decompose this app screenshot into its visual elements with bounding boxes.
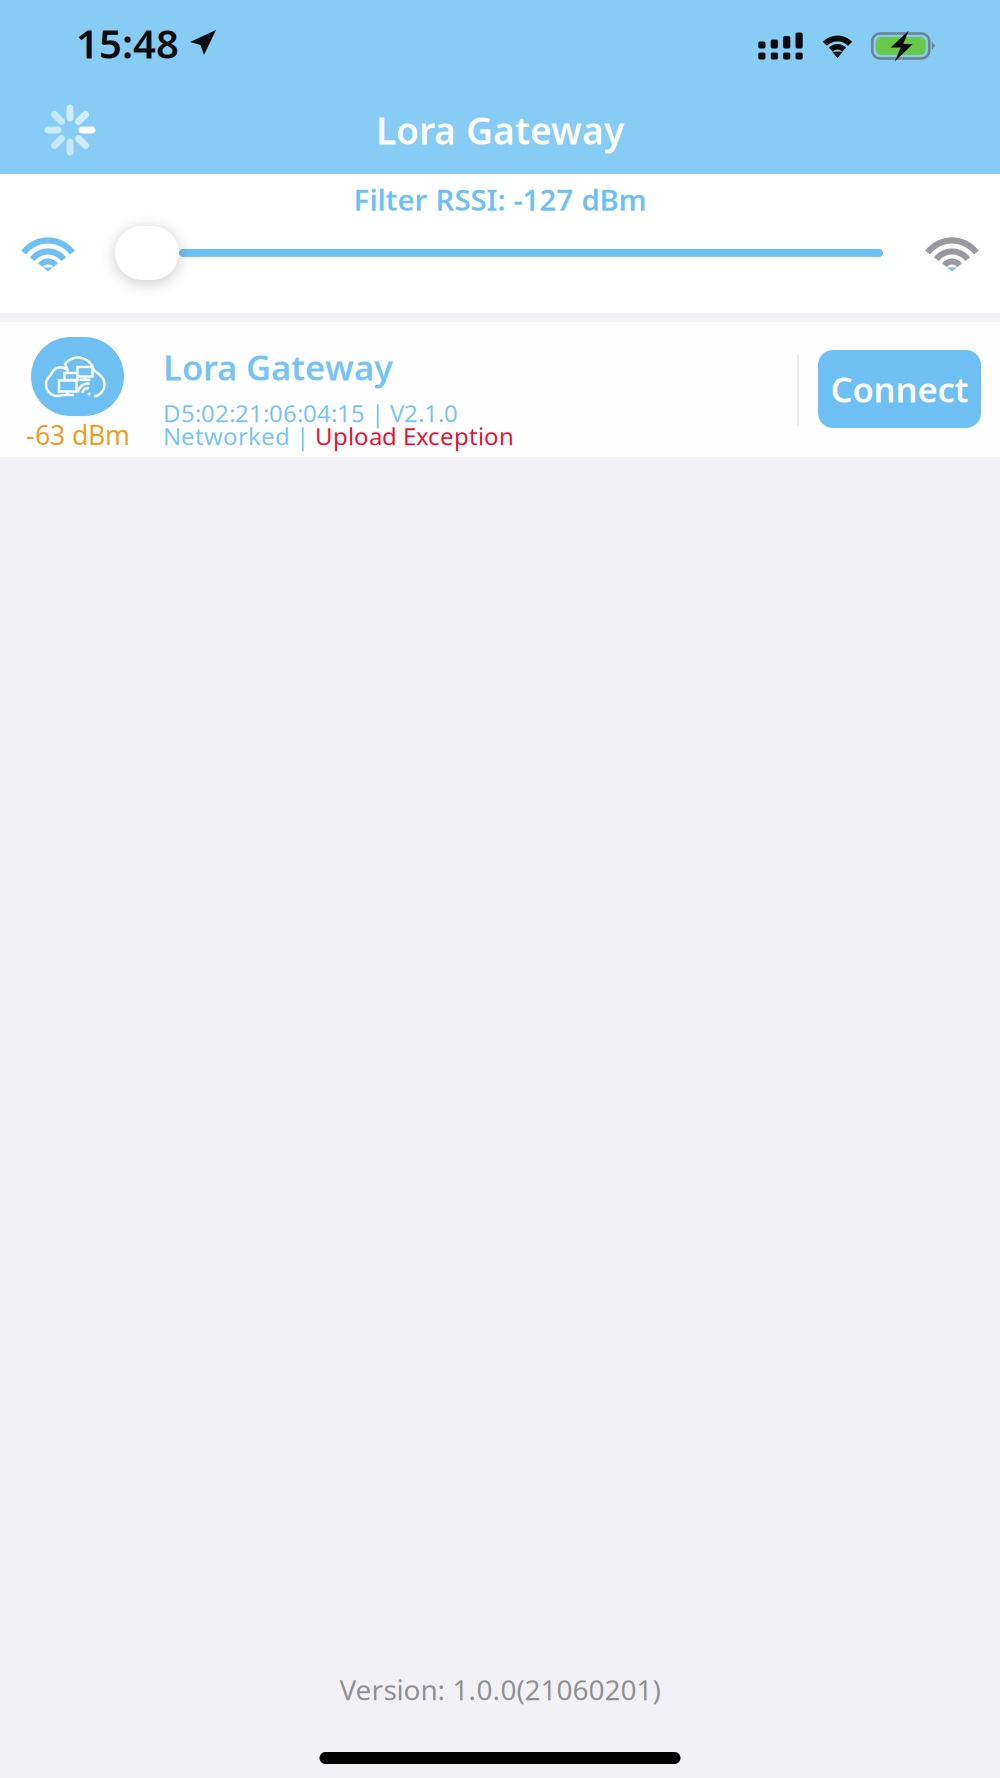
staticText: Upload Exception [315,420,514,452]
staticText: -63 dBm [26,417,130,452]
staticText: Version: 1.0.0(21060201) [339,1671,660,1708]
staticText: Filter RSSI: -127 dBm [353,180,646,219]
staticText: Lora Gateway [376,105,624,155]
staticText: 15:48 [76,16,179,69]
staticText: D5:02:21:06:04:15 | V2.1.0 [163,397,458,429]
button[interactable]: Scanning [32,92,108,168]
staticText: Networked | [163,420,315,452]
staticText: Lora Gateway [163,344,393,390]
staticText: Connect [830,366,968,412]
button[interactable]: -63 dBm [0,322,1000,457]
